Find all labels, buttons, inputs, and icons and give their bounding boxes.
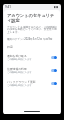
staticText: この機能を有効にします xyxy=(7,71,32,74)
button[interactable]: 通知を受け取る xyxy=(7,51,57,64)
staticText: 最終ログイン: 2024年5月12日 午前9時 xyxy=(7,37,53,41)
staticText: ▮▮▮ xyxy=(54,6,59,9)
staticText: アカウントのセキュリティ設定 xyxy=(7,13,57,23)
button[interactable]: 位置情報の利用 xyxy=(7,64,57,77)
staticText: 通知を受け取る xyxy=(7,54,27,58)
staticText: 設定 xyxy=(7,45,13,49)
staticText: この機能を有効にします xyxy=(7,58,32,61)
button[interactable]: バックグラウンド更新 xyxy=(7,77,57,90)
staticText: バックグラウンド更新 xyxy=(7,80,36,84)
staticText: アカウントを保護するために、二段階認証の設定を有効にしてください。安全性が向上し… xyxy=(7,25,57,34)
staticText: 位置情報の利用 xyxy=(7,67,27,71)
staticText: この機能を有効にします xyxy=(7,84,32,87)
staticText: 9:41 xyxy=(5,5,11,9)
